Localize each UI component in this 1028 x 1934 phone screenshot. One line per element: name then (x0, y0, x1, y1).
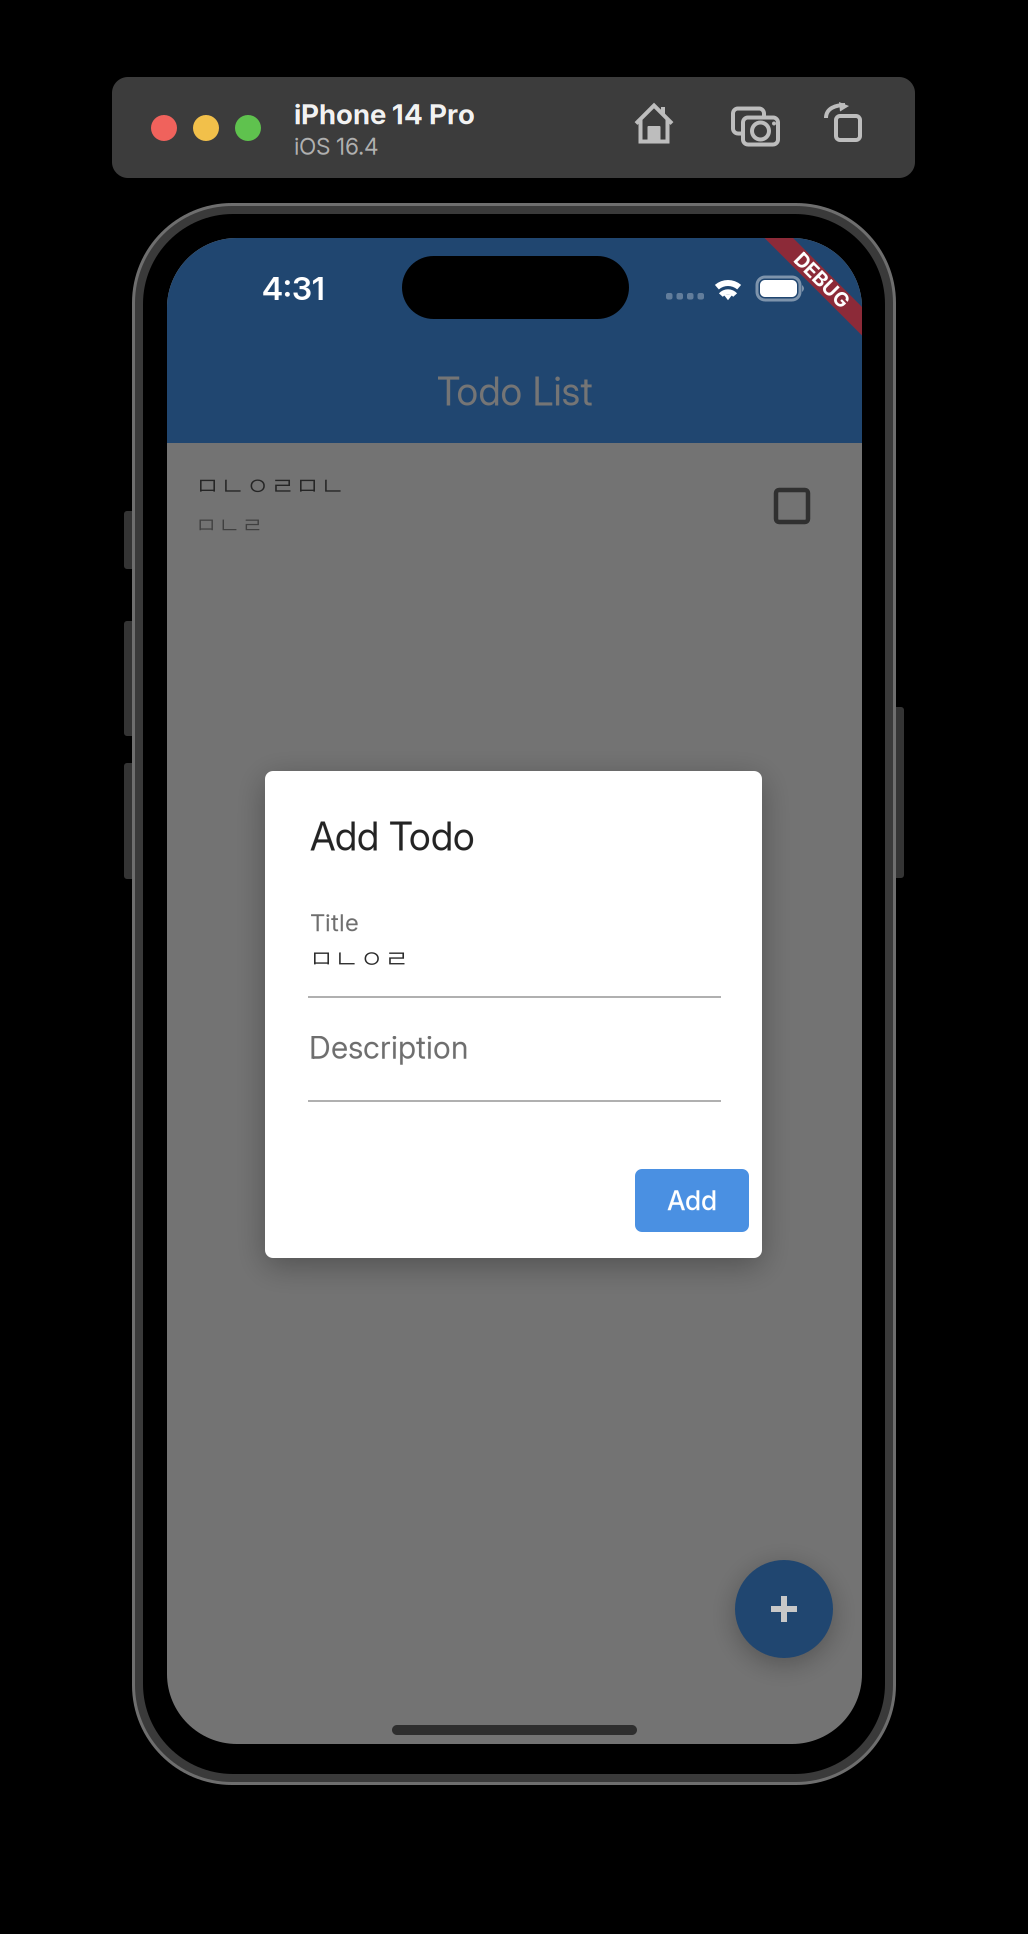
button[interactable]: Close (151, 115, 177, 141)
staticText: Add Todo (310, 813, 475, 860)
staticText: Title (310, 908, 359, 937)
button[interactable]: Add (635, 1169, 749, 1232)
button[interactable]: Home (634, 102, 674, 144)
button[interactable]: Add todo (735, 1560, 833, 1658)
staticText: 4:31 (262, 269, 325, 308)
staticText: iPhone 14 Pro (294, 97, 475, 131)
button[interactable]: Zoom (235, 115, 261, 141)
staticText: Todo List (436, 368, 592, 415)
staticText: iOS 16.4 (294, 133, 379, 160)
staticText: ㅁㄴㅇㄹ (309, 943, 409, 975)
button[interactable]: Screenshot (728, 104, 774, 141)
button[interactable]: Rotate (825, 102, 861, 142)
staticText: ㅁㄴㄹ (195, 511, 264, 540)
button[interactable]: Minimize (193, 115, 219, 141)
button[interactable]: ㅁㄴㅇㄹㅁㄴ (167, 440, 862, 570)
staticText: Description (309, 1029, 468, 1066)
staticText: Add (667, 1184, 717, 1217)
staticText: DEBUG (787, 268, 856, 292)
staticText: ㅁㄴㅇㄹㅁㄴ (195, 470, 345, 502)
